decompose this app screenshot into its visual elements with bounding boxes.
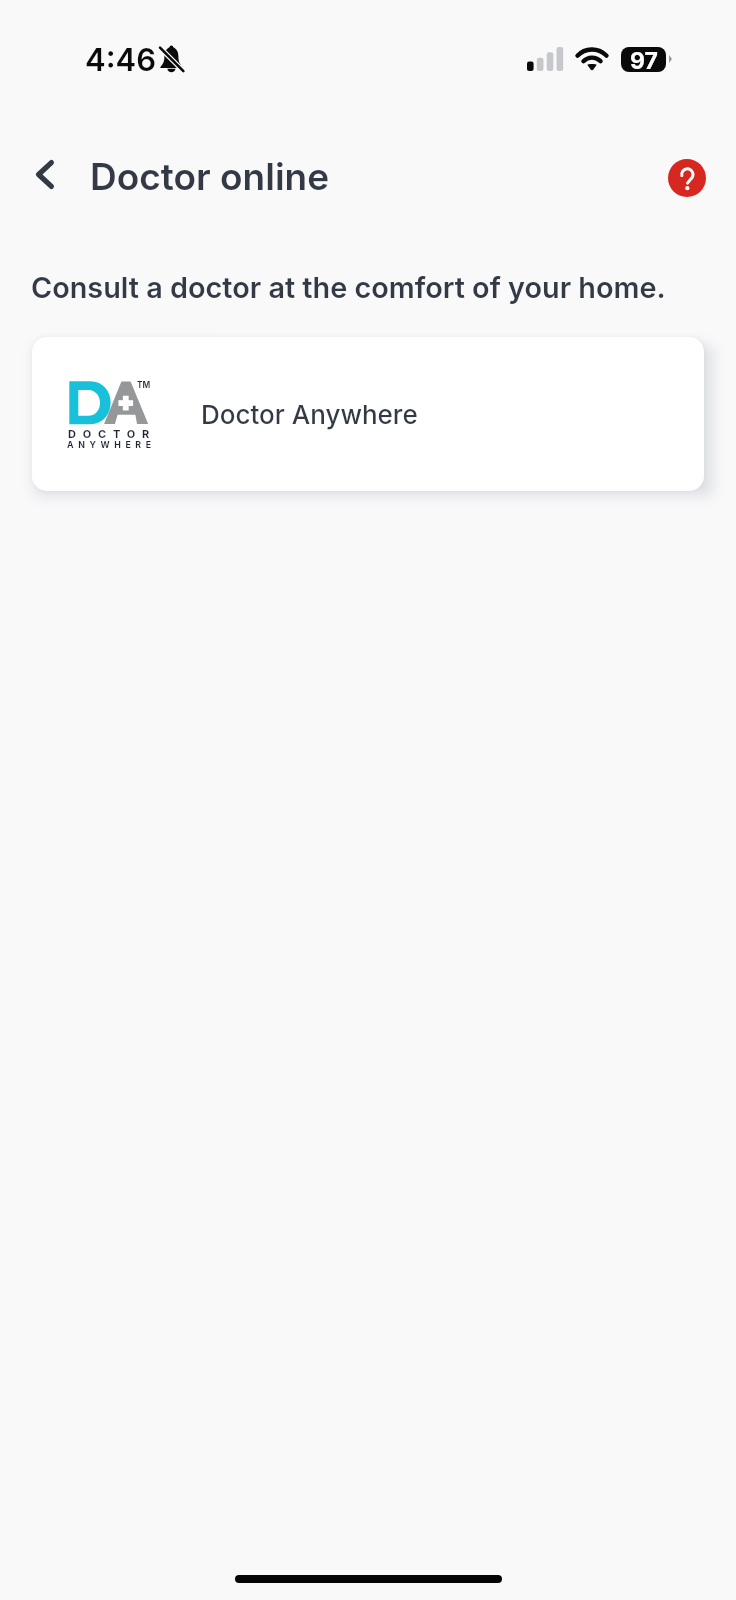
staticText: 4:46 xyxy=(85,41,157,79)
staticText: DOCTOR xyxy=(68,427,157,440)
staticText: Doctor online xyxy=(90,154,330,199)
staticText: Doctor Anywhere xyxy=(201,399,418,430)
staticText: TM xyxy=(137,380,151,390)
staticText: Consult a doctor at the comfort of your … xyxy=(31,270,666,305)
staticText: ANYWHERE xyxy=(67,439,156,450)
button[interactable]: Back xyxy=(17,146,73,202)
button[interactable]: Help xyxy=(668,159,706,197)
staticText: 97 xyxy=(630,47,658,72)
button[interactable]: TM xyxy=(32,337,704,491)
